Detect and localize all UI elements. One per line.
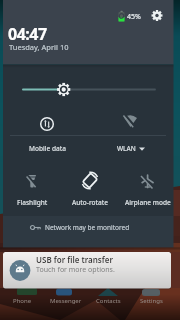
- staticText: Contacts: [96, 297, 121, 305]
- button[interactable]: [5, 105, 87, 155]
- staticText: Touch for more options.: [36, 265, 115, 275]
- button[interactable]: [120, 160, 173, 210]
- button[interactable]: [5, 160, 60, 210]
- staticText: Flashlight: [17, 198, 48, 207]
- staticText: Settings: [140, 297, 163, 305]
- button[interactable]: [62, 160, 118, 210]
- button[interactable]: [3, 252, 171, 288]
- staticText: Mobile data: [29, 144, 66, 153]
- staticText: USB for file transfer: [36, 254, 113, 265]
- staticText: 45%: [127, 12, 141, 22]
- button[interactable]: Network may be monitored: [0, 217, 170, 237]
- button[interactable]: [15, 80, 160, 98]
- staticText: Airplane mode: [125, 198, 171, 207]
- staticText: Phone: [13, 297, 32, 305]
- staticText: Network may be monitored: [45, 223, 130, 232]
- staticText: WLAN: [117, 144, 136, 153]
- staticText: Auto-rotate: [72, 198, 108, 207]
- button[interactable]: [89, 105, 171, 155]
- staticText: 04:47: [8, 23, 47, 45]
- staticText: Messenger: [50, 297, 82, 305]
- button[interactable]: [148, 6, 166, 24]
- staticText: Tuesday, April 10: [9, 42, 69, 52]
